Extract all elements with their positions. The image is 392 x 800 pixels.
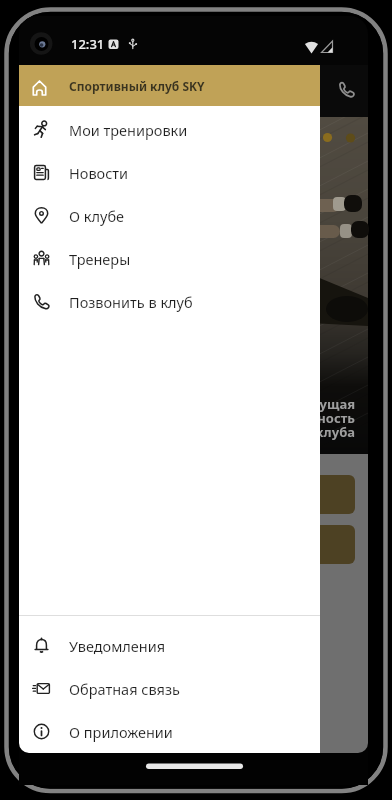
staticText: Уведомления bbox=[69, 636, 166, 656]
staticText: Позвонить в клуб bbox=[69, 292, 193, 312]
staticText: 12:31 bbox=[71, 35, 105, 53]
button[interactable]: Новости bbox=[19, 151, 320, 194]
button[interactable]: Мои тренировки bbox=[19, 108, 320, 151]
staticText: Спортивный клуб SKY bbox=[69, 78, 205, 94]
button[interactable]: Уведомления bbox=[19, 624, 320, 667]
staticText: О клубе bbox=[69, 206, 125, 226]
button[interactable]: О клубе bbox=[19, 194, 320, 237]
button[interactable]: Тренеры bbox=[19, 237, 320, 280]
button[interactable]: Обратная связь bbox=[19, 667, 320, 710]
staticText: Мои тренировки bbox=[69, 120, 188, 140]
button[interactable]: О приложении bbox=[19, 710, 320, 753]
button[interactable]: Позвонить в клуб bbox=[19, 280, 320, 323]
staticText: Текущая загруженность клуба bbox=[200, 395, 355, 441]
button[interactable]: Спортивный клуб SKY bbox=[19, 65, 320, 106]
staticText: О приложении bbox=[69, 722, 173, 742]
staticText: Новости bbox=[69, 163, 129, 183]
staticText: Тренеры bbox=[69, 249, 131, 269]
staticText: Обратная связь bbox=[69, 679, 180, 699]
